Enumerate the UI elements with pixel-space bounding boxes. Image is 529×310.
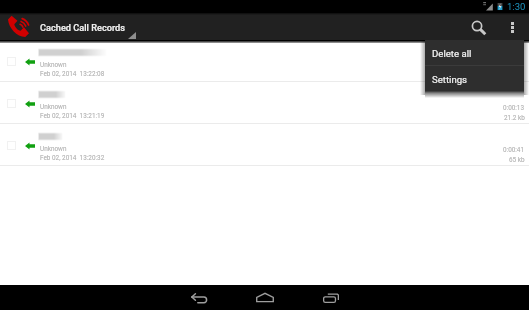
button[interactable]: Home: [232, 285, 298, 310]
staticText: Settings: [432, 74, 468, 85]
staticText: Unknown: [40, 103, 67, 111]
staticText: Unknown: [40, 145, 67, 153]
button[interactable]: Select call: [0, 40, 529, 82]
button[interactable]: Select call: [7, 57, 16, 66]
staticText: 21.2 kb: [504, 114, 525, 122]
staticText: Feb 02, 2014 13:20:32: [40, 154, 105, 162]
button[interactable]: Delete all: [425, 40, 524, 65]
button[interactable]: Back: [166, 285, 232, 310]
staticText: Feb 02, 2014 13:21:19: [40, 112, 105, 120]
staticText: 0:00:41: [503, 146, 525, 154]
staticText: 0:00:13: [503, 104, 525, 112]
staticText: 65 kb: [509, 156, 525, 164]
button[interactable]: Select call: [0, 124, 529, 166]
staticText: Delete all: [432, 48, 472, 59]
staticText: Cached Call Records: [40, 22, 126, 33]
staticText: Feb 02, 2014 13:22:08: [40, 70, 105, 78]
button[interactable]: Settings: [425, 66, 524, 91]
button[interactable]: Recent apps: [298, 285, 364, 310]
staticText: 1:30: [507, 1, 526, 12]
staticText: Unknown: [40, 61, 67, 69]
button[interactable]: Select call: [7, 99, 16, 108]
button[interactable]: Select call: [0, 82, 529, 124]
button[interactable]: Select call: [7, 141, 16, 150]
button[interactable]: More options: [499, 13, 525, 40]
button[interactable]: Search: [459, 13, 499, 40]
